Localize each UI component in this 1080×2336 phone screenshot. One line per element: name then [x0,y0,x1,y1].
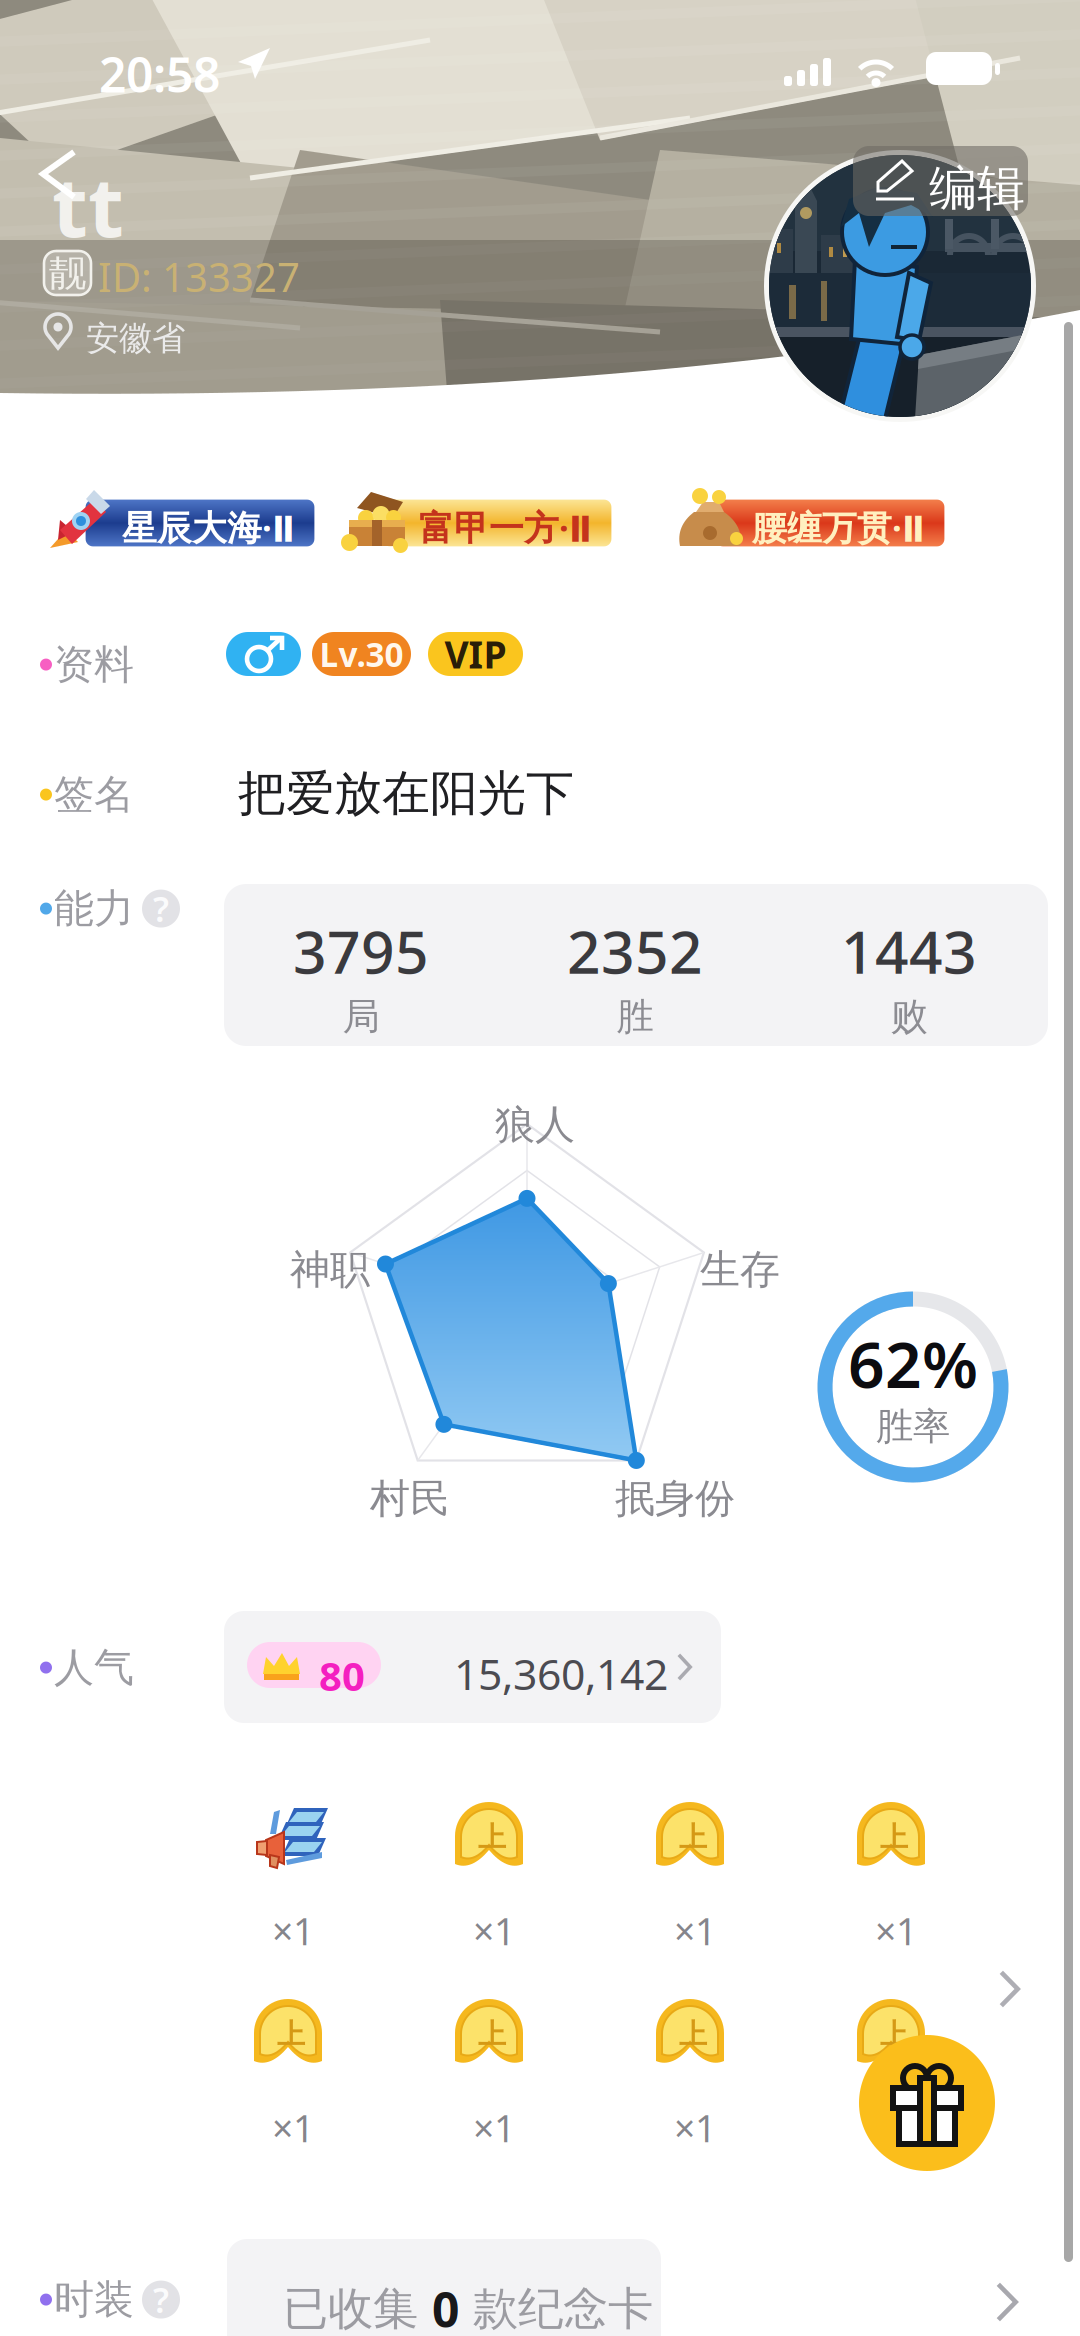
button[interactable]: 编辑 [853,146,1028,216]
staticText: 腰缠万贯·Ⅱ [752,504,925,550]
staticText: tt [52,150,124,260]
staticText: 0 [432,2277,459,2336]
staticText: 上 [679,1820,707,1854]
staticText: 上 [880,2017,908,2051]
staticText: 生存 [700,1245,780,1294]
staticText: 资料 [54,640,134,689]
staticText: 15,360,142 [454,1645,668,1702]
staticText: 安徽省 [86,318,185,359]
staticText: 20:58 [99,42,220,106]
staticText: 星辰大海·Ⅱ [122,504,295,550]
button[interactable]: 返回 [34,150,140,238]
staticText: 时装 [54,2275,134,2324]
staticText: ×1 [473,1906,515,1956]
staticText: ID: 133327 [98,250,300,303]
button[interactable]: 已收集 [227,2239,661,2336]
staticText: Lv.30 [319,632,403,676]
staticText: 80 [319,1649,365,1702]
button[interactable]: 80 [224,1611,721,1723]
staticText: 靓 [49,250,86,296]
staticText: 2352 [567,912,703,990]
button[interactable]: 礼物 [859,2035,995,2171]
staticText: 胜率 [876,1404,950,1449]
staticText: ×1 [875,1906,917,1956]
staticText: 1443 [841,912,977,990]
staticText: 编辑 [929,159,1025,218]
staticText: 上 [277,2017,305,2051]
staticText: 上 [880,1820,908,1854]
staticText: 上 [679,2017,707,2051]
staticText: 款纪念卡 [459,2281,653,2336]
staticText: 局 [342,994,379,1040]
staticText: 狼人 [495,1100,575,1149]
staticText: 签名 [54,770,134,819]
staticText: 上 [478,2017,506,2051]
staticText: 62% [848,1321,978,1406]
staticText: 3795 [293,912,429,990]
staticText: 抿身份 [615,1474,735,1523]
staticText: ×1 [875,2103,917,2153]
staticText: 已收集 [283,2281,432,2336]
staticText: ×1 [272,2103,314,2153]
staticText: 胜 [616,994,653,1040]
staticText: ? [153,2276,169,2322]
staticText: 神职 [290,1245,370,1294]
staticText: 把爱放在阳光下 [238,764,574,823]
staticText: 败 [890,994,927,1040]
staticText: 上 [478,1820,506,1854]
staticText: 人气 [54,1643,134,1692]
staticText: 富甲一方·Ⅱ [419,504,592,550]
staticText: ×1 [272,1906,314,1956]
staticText: 能力 [54,884,134,933]
staticText: ? [153,885,169,931]
staticText: ×1 [674,2103,716,2153]
staticText: 村民 [370,1474,450,1523]
staticText: VIP [444,629,506,679]
staticText: ×1 [674,1906,716,1956]
staticText: ×1 [473,2103,515,2153]
